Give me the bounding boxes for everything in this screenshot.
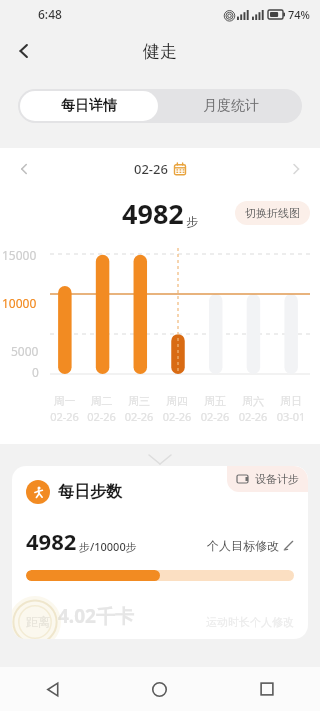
staticText: 6:48 — [38, 6, 62, 22]
staticText: 02-26 — [134, 160, 168, 178]
staticText: 0 — [32, 364, 39, 380]
staticText: 个人目标修改 — [207, 538, 279, 553]
staticText: 4.02千卡 — [58, 603, 134, 629]
staticText: 10000 — [2, 295, 37, 311]
staticText: 02-26 — [158, 409, 196, 424]
staticText: 健走 — [143, 41, 177, 62]
button[interactable]: 月度统计 — [160, 89, 302, 123]
staticText: 周五 — [196, 394, 234, 408]
staticText: 距离 — [26, 614, 50, 629]
staticText: 周三 — [120, 394, 158, 408]
button[interactable]: Next day — [280, 153, 312, 185]
staticText: 15000 — [2, 247, 37, 263]
button[interactable]: 设备计步 — [227, 466, 308, 492]
staticText: 03-01 — [272, 409, 310, 424]
staticText: 月度统计 — [203, 97, 259, 115]
staticText: 周六 — [234, 394, 272, 408]
staticText: 02-26 — [196, 409, 234, 424]
staticText: 02-26 — [83, 409, 120, 424]
staticText: 切换折线图 — [245, 206, 300, 220]
staticText: 每日详情 — [61, 97, 117, 115]
button[interactable]: Previous day — [8, 153, 40, 185]
button[interactable]: 切换折线图 — [235, 201, 310, 225]
button[interactable]: 每日详情 — [20, 91, 158, 121]
staticText: 每日步数 — [58, 482, 122, 502]
staticText: 周日 — [272, 394, 310, 408]
button[interactable]: Back — [6, 33, 42, 69]
staticText: 5000 — [11, 343, 39, 359]
button[interactable]: 距离 — [26, 603, 294, 629]
staticText: 4982 — [26, 526, 77, 556]
staticText: 周一 — [46, 394, 83, 408]
staticText: 周二 — [83, 394, 120, 408]
staticText: 74% — [288, 7, 310, 22]
staticText: 4982 — [122, 195, 184, 232]
staticText: 02-26 — [234, 409, 272, 424]
button[interactable]: Home — [106, 667, 213, 711]
staticText: 步 — [186, 214, 198, 229]
staticText: 运动时长个人修改 — [206, 615, 294, 629]
button[interactable]: 个人目标修改 — [207, 538, 294, 556]
button[interactable]: 02-26 — [134, 160, 186, 178]
staticText: 步/10000步 — [79, 539, 137, 554]
staticText: 02-26 — [120, 409, 158, 424]
button[interactable]: Back — [0, 667, 106, 711]
staticText: 设备计步 — [255, 472, 299, 486]
staticText: 02-26 — [46, 409, 83, 424]
staticText: 周四 — [158, 394, 196, 408]
button[interactable]: Recent apps — [213, 667, 320, 711]
